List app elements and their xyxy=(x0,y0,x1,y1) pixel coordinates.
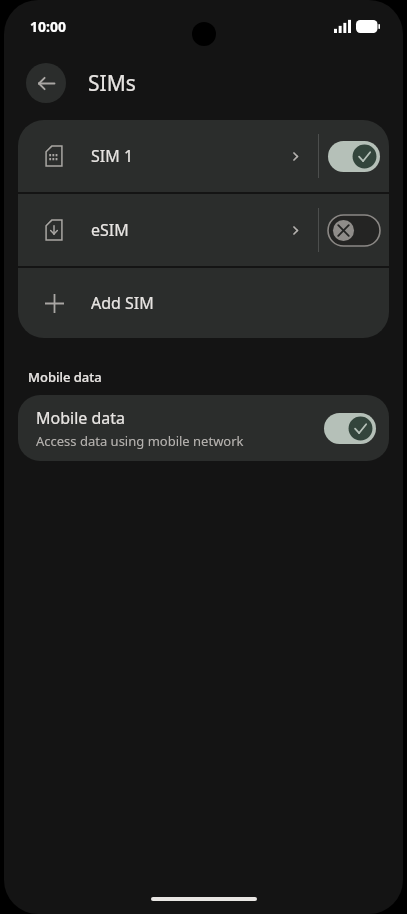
button[interactable] xyxy=(319,194,389,266)
staticText: Add SIM xyxy=(91,292,154,314)
button[interactable]: eSIM xyxy=(18,194,318,266)
staticText: SIM 1 xyxy=(91,145,134,167)
staticText: Mobile data xyxy=(28,368,102,386)
button[interactable]: Add SIM xyxy=(18,268,389,338)
staticText: eSIM xyxy=(91,219,129,241)
staticText: 10:00 xyxy=(30,17,66,36)
staticText: SIMs xyxy=(88,69,136,98)
button[interactable] xyxy=(319,120,389,192)
button[interactable]: Mobile data xyxy=(18,395,389,461)
staticText: Mobile data xyxy=(36,407,126,429)
button[interactable]: SIM 1 xyxy=(18,120,318,192)
staticText: Access data using mobile network xyxy=(36,432,244,450)
button[interactable]: Back xyxy=(26,63,66,103)
